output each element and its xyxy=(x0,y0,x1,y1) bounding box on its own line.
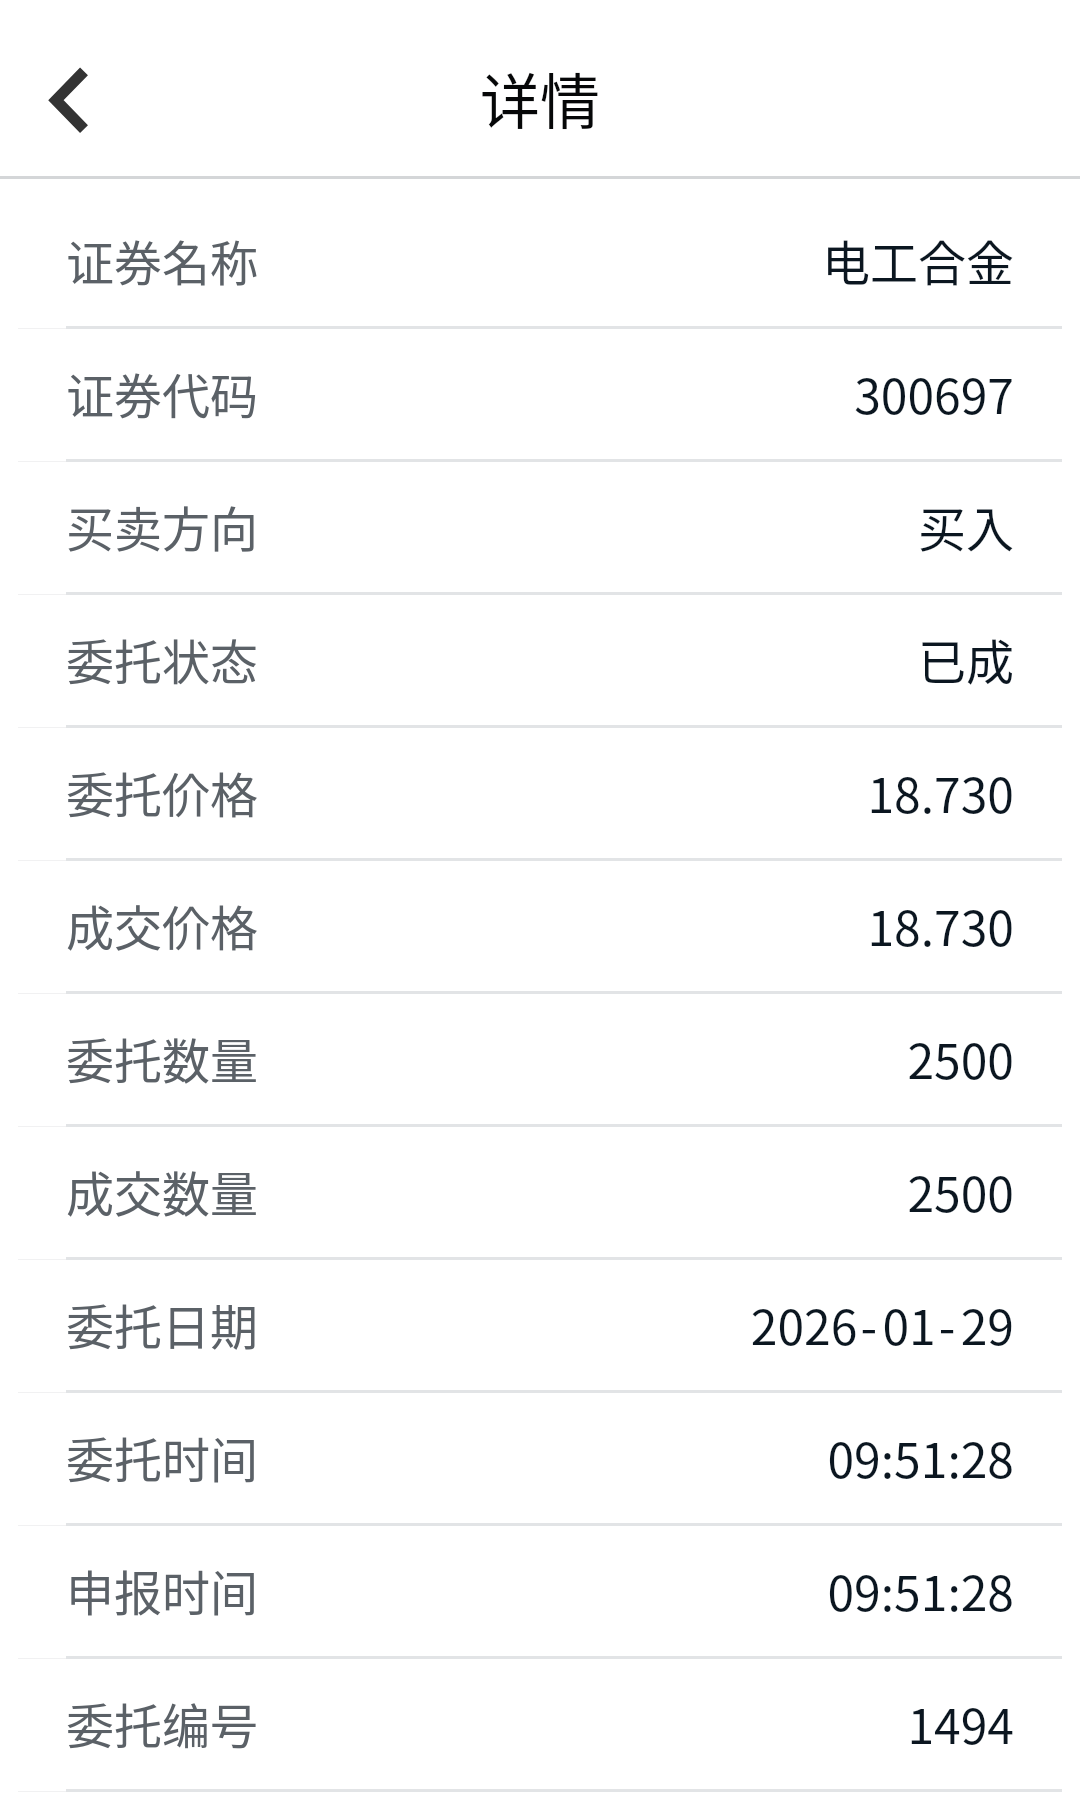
staticText: 已成 xyxy=(917,624,1014,694)
staticText: 300697 xyxy=(854,358,1014,428)
staticText: 证券名称 xyxy=(66,225,259,295)
staticText: 买卖方向 xyxy=(66,491,259,561)
staticText: 成交数量 xyxy=(66,1156,259,1226)
staticText: 2500 xyxy=(907,1023,1014,1093)
staticText: 买入 xyxy=(917,491,1014,561)
staticText: 18.730 xyxy=(867,757,1014,827)
staticText: 2026 - 01 - 29 xyxy=(750,1289,1014,1359)
button[interactable]: 委托时间 xyxy=(0,1393,1080,1526)
staticText: 18.730 xyxy=(867,890,1014,960)
staticText: 09:51:28 xyxy=(827,1422,1014,1492)
staticText: 申报时间 xyxy=(66,1555,259,1625)
button[interactable]: 委托数量 xyxy=(0,994,1080,1127)
staticText: 委托时间 xyxy=(66,1422,259,1492)
staticText: 电工合金 xyxy=(821,225,1014,295)
button[interactable]: 成交数量 xyxy=(0,1127,1080,1260)
button[interactable]: 申报时间 xyxy=(0,1526,1080,1659)
button[interactable]: 委托状态 xyxy=(0,595,1080,728)
button[interactable]: 委托日期 xyxy=(0,1260,1080,1393)
button[interactable]: 证券代码 xyxy=(0,329,1080,462)
button[interactable]: 成交价格 xyxy=(0,861,1080,994)
button[interactable]: 委托价格 xyxy=(0,728,1080,861)
button[interactable]: Back xyxy=(0,19,136,182)
staticText: 证券代码 xyxy=(66,358,259,428)
button[interactable]: 委托编号 xyxy=(0,1659,1080,1792)
staticText: 详情 xyxy=(480,54,600,141)
button[interactable]: 证券名称 xyxy=(0,196,1080,329)
staticText: 成交价格 xyxy=(66,890,259,960)
staticText: 2500 xyxy=(907,1156,1014,1226)
staticText: 09:51:28 xyxy=(827,1555,1014,1625)
staticText: 1494 xyxy=(907,1688,1014,1758)
button[interactable]: 买卖方向 xyxy=(0,462,1080,595)
staticText: 委托状态 xyxy=(66,624,259,694)
staticText: 委托日期 xyxy=(66,1289,259,1359)
staticText: 委托编号 xyxy=(66,1688,259,1758)
staticText: 委托数量 xyxy=(66,1023,259,1093)
staticText: 委托价格 xyxy=(66,757,259,827)
